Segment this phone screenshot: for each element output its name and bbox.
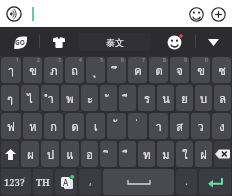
button[interactable]: TH (33, 169, 53, 195)
button[interactable]: อ (81, 141, 98, 167)
button[interactable]: ๆ (1, 85, 19, 111)
button[interactable]: ้ (107, 113, 126, 139)
button[interactable]: ๅ (1, 57, 21, 83)
button[interactable]: ง (212, 113, 231, 139)
button[interactable]: ย (176, 85, 193, 111)
staticText: - (227, 57, 229, 64)
button[interactable]: Space (103, 169, 174, 195)
button[interactable]: Backspace (214, 141, 231, 167)
button[interactable]: แ (61, 141, 79, 167)
staticText: ะ (87, 90, 93, 107)
staticText: 2 (37, 57, 40, 64)
staticText: 0 (205, 57, 208, 64)
button[interactable]: Switch input method (55, 169, 77, 195)
button[interactable]: ิ (100, 141, 117, 167)
staticText: น (162, 90, 170, 107)
button[interactable]: จ (170, 57, 189, 83)
staticText: ๅ (8, 62, 14, 79)
staticText: แ (66, 146, 74, 163)
staticText: ว (197, 118, 204, 135)
staticText: GO (15, 38, 25, 47)
button[interactable]: บ (195, 85, 212, 111)
button[interactable]: ข (191, 57, 210, 83)
button[interactable]: Enter (199, 169, 231, 195)
button[interactable]: ี (119, 85, 136, 111)
staticText: เ (94, 118, 98, 135)
button[interactable]: ก (44, 113, 63, 139)
staticText: ข (197, 62, 205, 79)
button[interactable]: ไ (21, 85, 39, 111)
button[interactable]: ฟ (1, 113, 21, 139)
button[interactable]: . (176, 169, 197, 195)
staticText: ท (143, 146, 151, 163)
staticText: ° (23, 175, 26, 183)
staticText: , (89, 173, 92, 188)
button[interactable]: ่ (128, 113, 147, 139)
button[interactable]: 泰文 (79, 33, 151, 51)
button[interactable]: ล (214, 85, 231, 111)
button[interactable]: น (157, 85, 174, 111)
button[interactable]: พ (61, 85, 79, 111)
button[interactable]: ถ (65, 57, 84, 83)
button[interactable]: Theme (50, 33, 68, 51)
staticText: ย (181, 90, 188, 107)
staticText: 9 (184, 57, 187, 64)
staticText: ผ (27, 146, 34, 163)
button[interactable]: ท (138, 141, 155, 167)
staticText: อ (86, 146, 93, 163)
staticText: ม (162, 146, 170, 163)
button[interactable]: ื (119, 141, 136, 167)
staticText: บ (200, 90, 207, 107)
button[interactable]: า (149, 113, 168, 139)
button[interactable]: ฝ (195, 141, 212, 167)
button[interactable]: GO Keyboard menu (11, 33, 29, 51)
button[interactable]: ั (100, 85, 117, 111)
button[interactable]: ำ (41, 85, 59, 111)
button[interactable]: ึ (107, 57, 126, 83)
button[interactable]: ะ (81, 85, 98, 111)
button[interactable]: Add (210, 6, 226, 22)
button[interactable]: ต (149, 57, 168, 83)
staticText: 6 (121, 57, 124, 64)
staticText: พ (66, 90, 74, 107)
button[interactable]: ส (170, 113, 189, 139)
button[interactable]: ภ (44, 57, 63, 83)
staticText: ป (47, 146, 54, 163)
button[interactable]: ุ (86, 57, 105, 83)
button[interactable]: ด (65, 113, 84, 139)
button[interactable]: ช (212, 57, 231, 83)
button[interactable]: Emoji (165, 33, 183, 51)
button[interactable]: Hide keyboard (204, 33, 222, 51)
staticText: ด (71, 118, 79, 135)
staticText: 7 (142, 57, 145, 64)
button[interactable]: ค (128, 57, 147, 83)
button[interactable]: 123? (1, 169, 31, 195)
button[interactable]: ผ (21, 141, 39, 167)
staticText: ฝ (200, 146, 207, 163)
staticText: 泰文 (106, 37, 124, 48)
staticText: จ (176, 62, 183, 79)
button[interactable]: , (79, 169, 101, 195)
button[interactable]: ว (191, 113, 210, 139)
staticText: ฟ (7, 118, 15, 135)
staticText: ก (50, 118, 57, 135)
button[interactable]: ข (23, 57, 42, 83)
staticText: ไ (27, 90, 33, 107)
button[interactable]: ห (23, 113, 42, 139)
staticText: A (63, 177, 69, 187)
staticText: ต (155, 62, 163, 79)
staticText: ถ (71, 62, 78, 79)
button[interactable]: Shift (1, 141, 19, 167)
staticText: ค (134, 62, 142, 79)
button[interactable]: ม (157, 141, 174, 167)
button[interactable]: เ (86, 113, 105, 139)
button[interactable]: ร (138, 85, 155, 111)
staticText: 1 (16, 57, 19, 64)
staticText: ล (219, 90, 226, 107)
button[interactable]: ใ (176, 141, 193, 167)
button[interactable]: Emoji (188, 6, 204, 22)
button[interactable]: Voice input (4, 4, 24, 24)
button[interactable]: ป (41, 141, 59, 167)
staticText: 8 (163, 57, 166, 64)
staticText: 4 (79, 57, 82, 64)
